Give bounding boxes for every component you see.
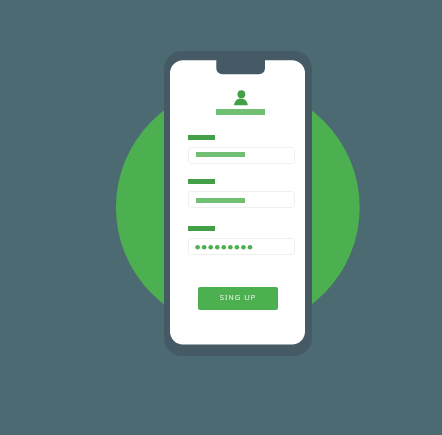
button[interactable]: Full name bbox=[188, 147, 295, 164]
staticText: SING UP bbox=[198, 292, 278, 310]
button[interactable]: SING UP bbox=[198, 287, 278, 310]
button[interactable]: Email address bbox=[188, 191, 295, 208]
button[interactable]: Password bbox=[188, 238, 295, 255]
button[interactable]: Profile picture bbox=[233, 89, 249, 107]
